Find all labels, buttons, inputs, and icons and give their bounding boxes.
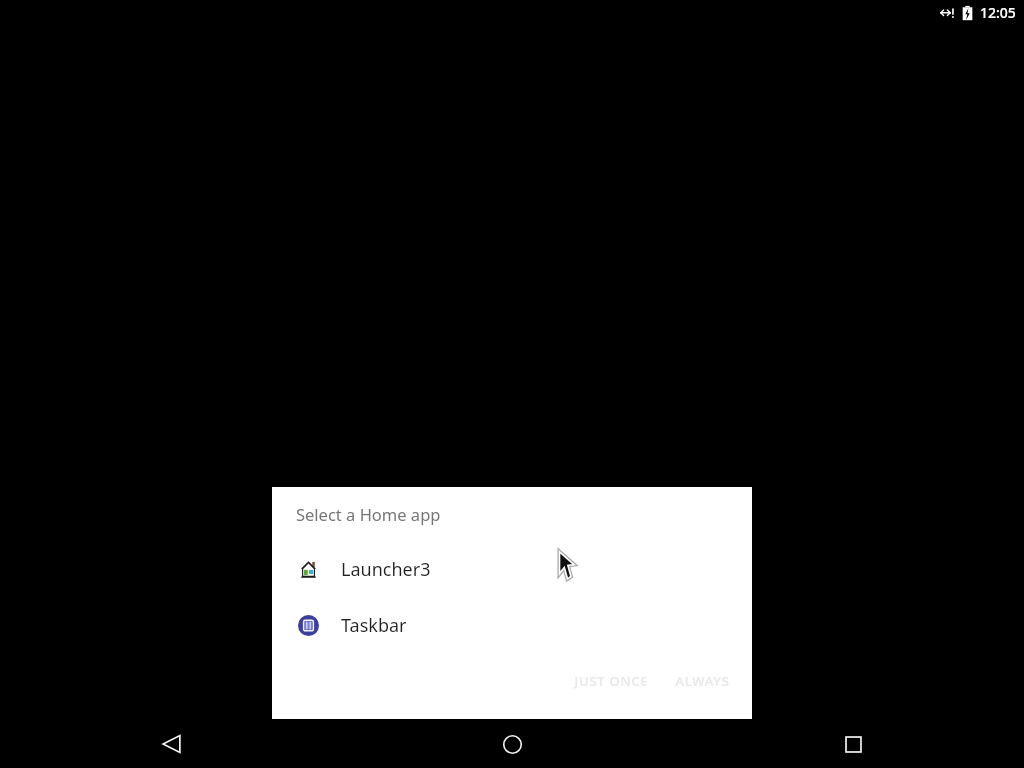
other: USB debugging bbox=[938, 6, 955, 20]
other: Battery charging bbox=[962, 5, 973, 21]
button[interactable]: Home bbox=[342, 720, 683, 768]
button[interactable]: ALWAYS bbox=[667, 664, 738, 698]
button[interactable]: Taskbar bbox=[272, 597, 752, 653]
staticText: Launcher3 bbox=[341, 557, 431, 582]
button[interactable]: Launcher3 bbox=[272, 541, 752, 597]
staticText: ALWAYS bbox=[675, 672, 730, 690]
staticText: JUST ONCE bbox=[574, 672, 649, 690]
button[interactable]: Back bbox=[0, 720, 342, 768]
staticText: Taskbar bbox=[341, 613, 407, 638]
staticText: 12:05 bbox=[980, 3, 1016, 22]
button[interactable]: Recent apps bbox=[683, 720, 1024, 768]
button[interactable]: JUST ONCE bbox=[566, 664, 657, 698]
staticText: Select a Home app bbox=[296, 503, 441, 525]
